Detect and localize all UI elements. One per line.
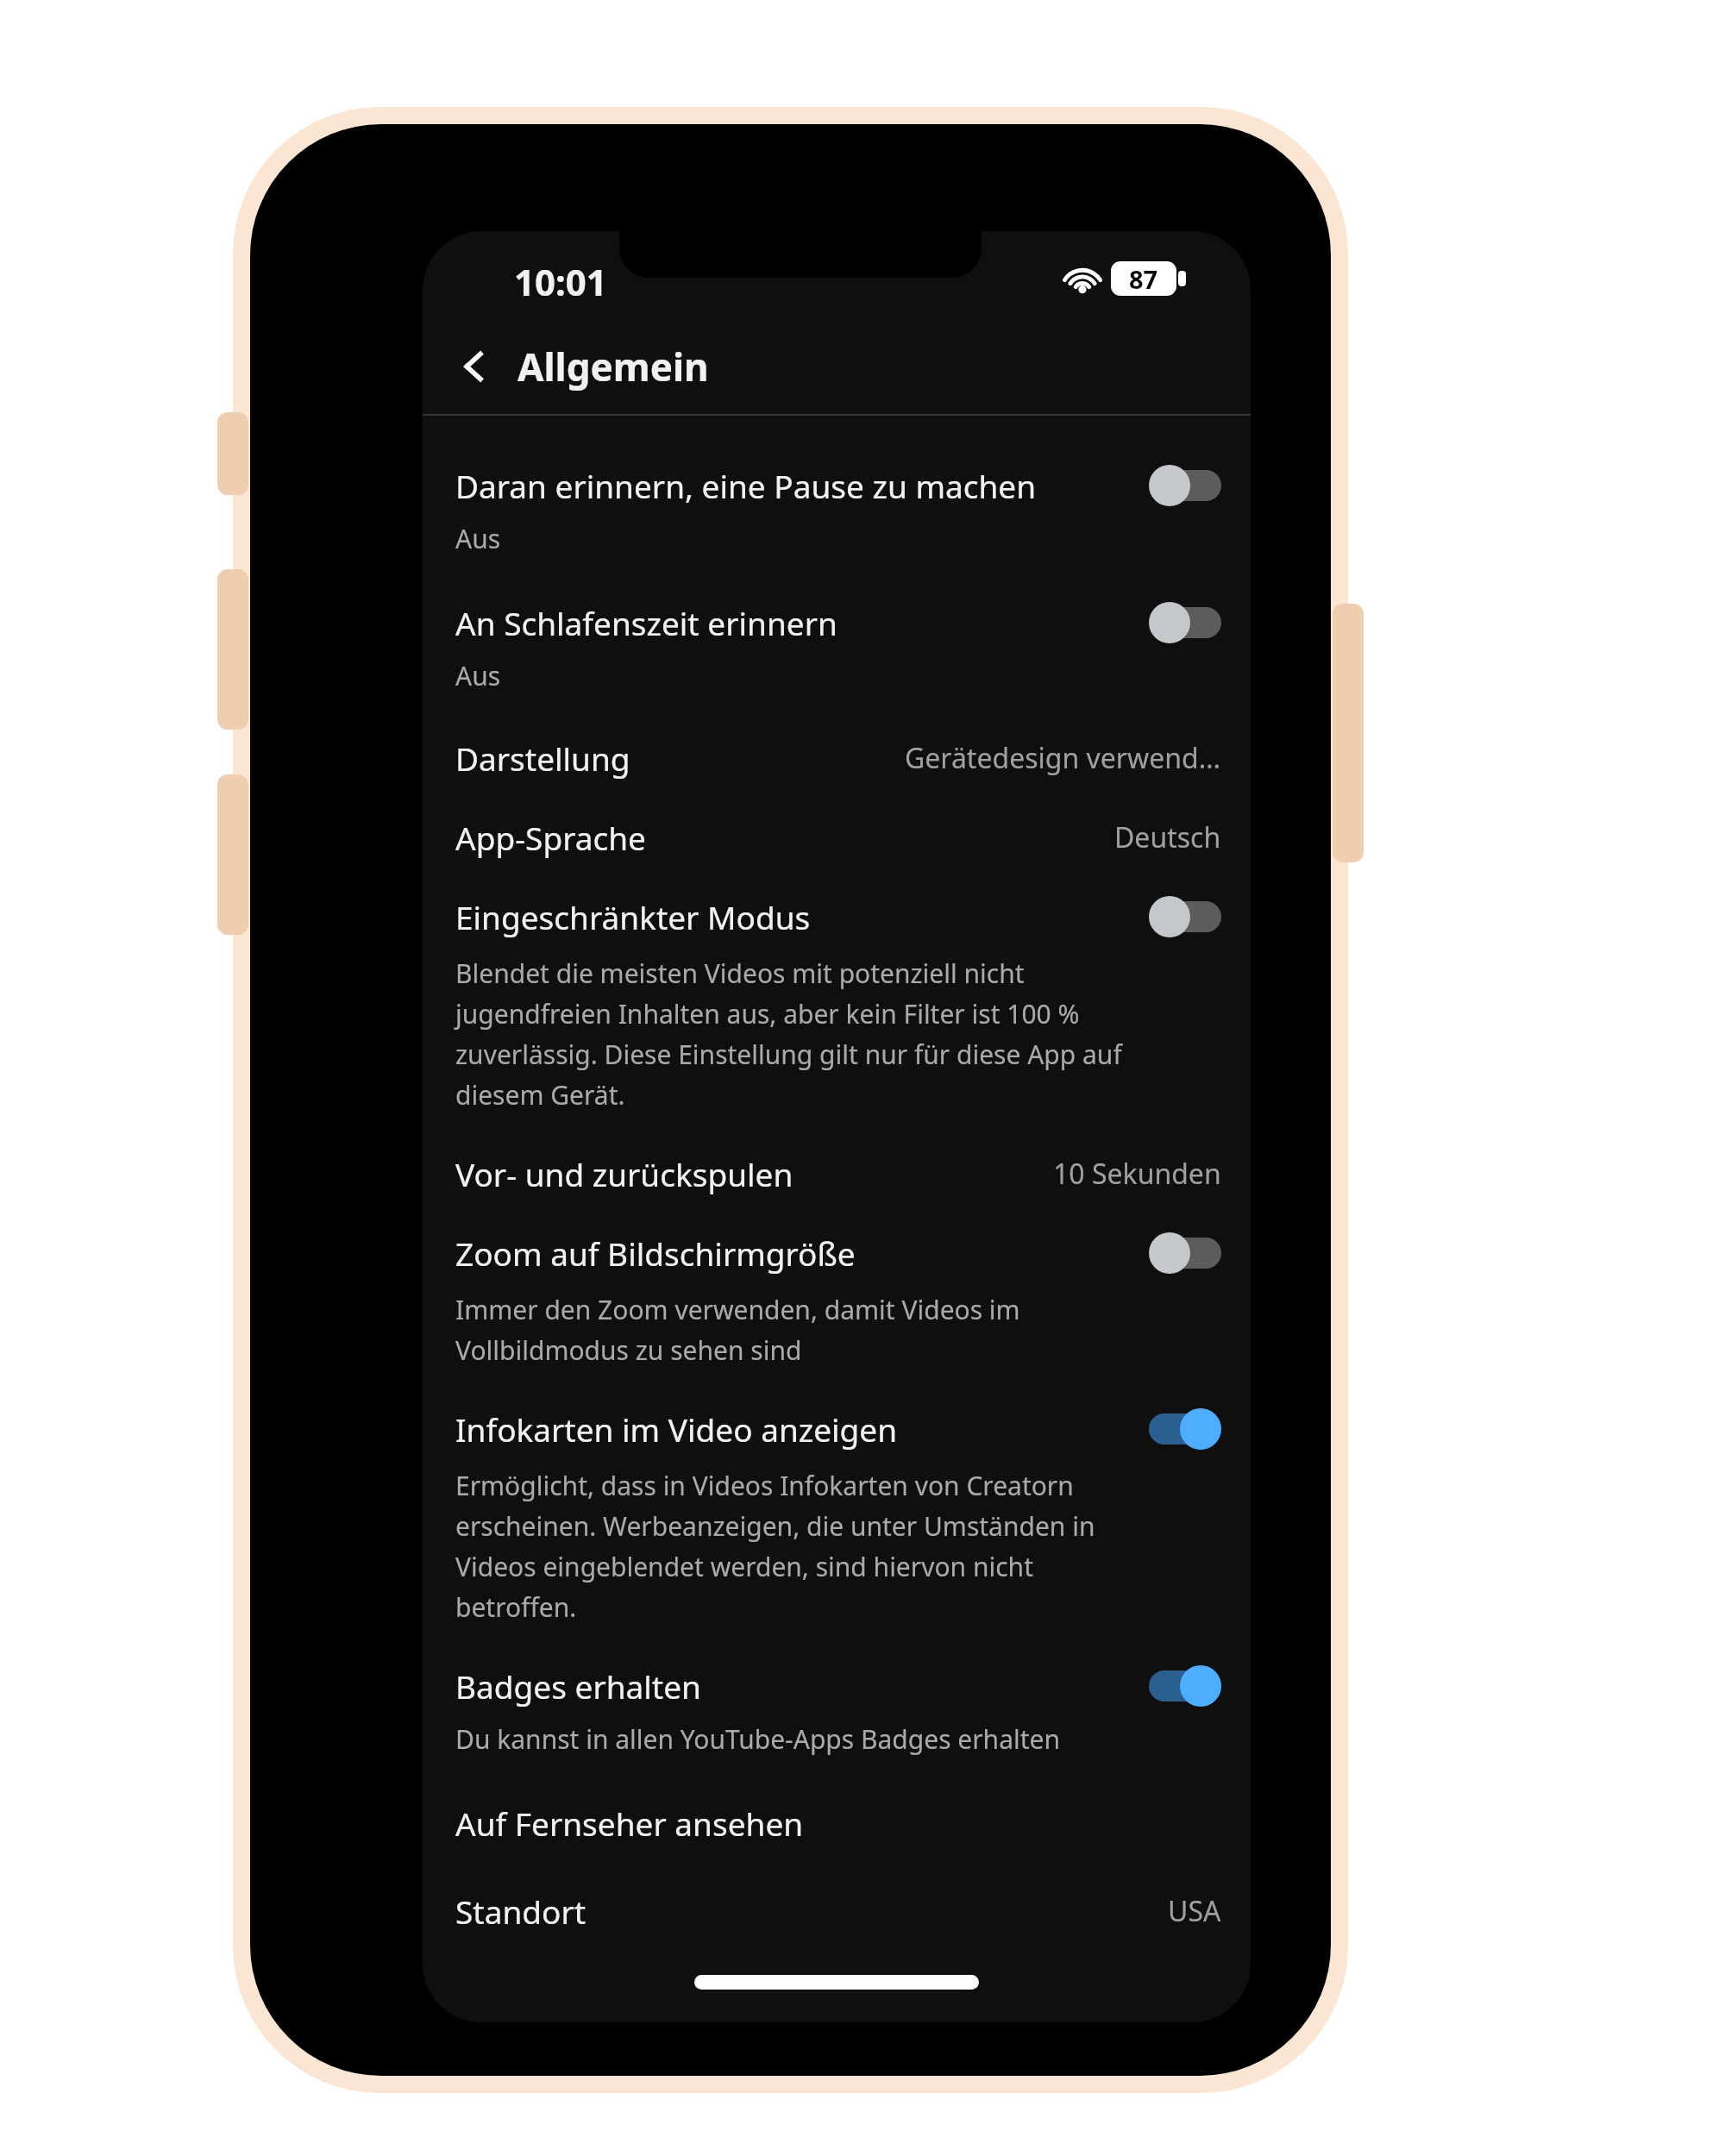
button[interactable]: Eingeschränkter Modus bbox=[423, 859, 1251, 1112]
staticText: Zoom auf Bildschirmgröße bbox=[455, 1232, 856, 1275]
staticText: Gerätedesign verwend… bbox=[905, 739, 1221, 777]
button[interactable]: App-Sprache bbox=[423, 780, 1251, 859]
staticText: Daran erinnern, eine Pause zu machen bbox=[455, 464, 1037, 507]
staticText: Aus bbox=[455, 658, 1145, 693]
button[interactable]: Standort bbox=[423, 1845, 1251, 1933]
staticText: Infokarten im Video anzeigen bbox=[455, 1407, 898, 1451]
staticText: Eingeschränkter Modus bbox=[455, 895, 811, 938]
staticText: Deutsch bbox=[1114, 818, 1221, 856]
button[interactable]: Toggle off bbox=[1149, 601, 1221, 644]
staticText: An Schlafenszeit erinnern bbox=[455, 601, 837, 644]
button[interactable]: Infokarten im Video anzeigen bbox=[423, 1368, 1251, 1625]
staticText: Blendet die meisten Videos mit potenziel… bbox=[455, 956, 1145, 1112]
staticText: Allgemein bbox=[517, 341, 709, 392]
staticText: Standort bbox=[455, 1890, 586, 1933]
button[interactable]: Vor- und zurückspulen bbox=[423, 1112, 1251, 1195]
button[interactable]: Badges erhalten bbox=[423, 1625, 1251, 1757]
staticText: Vor- und zurückspulen bbox=[455, 1152, 793, 1195]
staticText: Du kannst in allen YouTube-Apps Badges e… bbox=[455, 1721, 1145, 1757]
staticText: 10 Sekunden bbox=[1053, 1155, 1221, 1193]
staticText: Ermöglicht, dass in Videos Infokarten vo… bbox=[455, 1468, 1145, 1625]
staticText: Darstellung bbox=[455, 736, 630, 780]
staticText: Auf Fernseher ansehen bbox=[455, 1802, 804, 1845]
staticText: Aus bbox=[455, 521, 1145, 556]
button[interactable]: Daran erinnern, eine Pause zu machen bbox=[423, 416, 1251, 556]
button[interactable]: Darstellung bbox=[423, 693, 1251, 780]
button[interactable]: Toggle on bbox=[1149, 1407, 1221, 1451]
button[interactable]: Toggle off bbox=[1149, 1232, 1221, 1275]
button[interactable]: Toggle off bbox=[1149, 895, 1221, 938]
staticText: Immer den Zoom verwenden, damit Videos i… bbox=[455, 1292, 1145, 1368]
staticText: 87 bbox=[1129, 262, 1158, 296]
staticText: 10:01 bbox=[514, 257, 607, 306]
button[interactable]: Zoom auf Bildschirmgröße bbox=[423, 1195, 1251, 1368]
button[interactable]: An Schlafenszeit erinnern bbox=[423, 556, 1251, 693]
button[interactable]: Toggle off bbox=[1149, 464, 1221, 507]
staticText: USA bbox=[1168, 1892, 1221, 1930]
staticText: App-Sprache bbox=[455, 816, 646, 859]
button[interactable]: Back bbox=[440, 332, 509, 401]
staticText: Badges erhalten bbox=[455, 1664, 701, 1708]
button[interactable]: Toggle on bbox=[1149, 1664, 1221, 1708]
button[interactable]: Auf Fernseher ansehen bbox=[423, 1757, 1251, 1845]
